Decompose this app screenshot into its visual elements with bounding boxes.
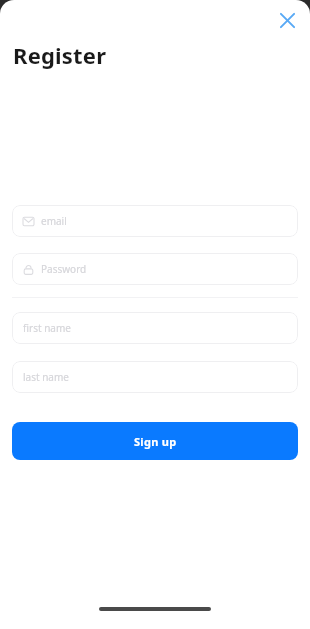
button[interactable]: email	[12, 205, 298, 237]
button[interactable]: first name	[12, 312, 298, 344]
button[interactable]: Close	[270, 3, 304, 37]
staticText: Sign up	[134, 434, 177, 449]
button[interactable]: Sign up	[12, 422, 298, 460]
staticText: email	[41, 214, 67, 228]
button[interactable]: last name	[12, 361, 298, 393]
button[interactable]: Password	[12, 253, 298, 285]
staticText: last name	[23, 370, 69, 384]
staticText: Register	[13, 40, 107, 70]
staticText: Password	[41, 262, 87, 276]
staticText: first name	[23, 321, 71, 335]
